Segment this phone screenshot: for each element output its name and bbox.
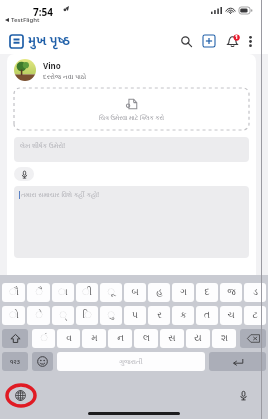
staticText: ર [157, 311, 162, 320]
button[interactable]: ્ [52, 306, 74, 325]
staticText: ક [180, 311, 187, 320]
button[interactable]: દ [196, 283, 218, 302]
staticText: ત [204, 311, 210, 320]
button[interactable]: Switch keyboard language [13, 388, 28, 403]
staticText: દ [204, 288, 210, 297]
staticText: ટ [252, 311, 258, 320]
button[interactable]: ા [52, 283, 74, 302]
staticText: ગુજરાતી [119, 358, 143, 365]
button[interactable]: લેખ શીર્ષક ઉમેરો! [14, 137, 249, 162]
staticText: વ [66, 334, 72, 343]
button[interactable]: ક [172, 306, 194, 325]
staticText: લેખ શીર્ષક ઉમેરો! [20, 141, 65, 150]
staticText: ચ [227, 311, 235, 320]
staticText: હ [156, 288, 163, 297]
button[interactable]: ચિત્ર ઉમેરવા માટે ક્લિક કરો [14, 88, 249, 130]
button[interactable]: વ [57, 329, 80, 348]
button[interactable]: Add new [199, 31, 219, 51]
button[interactable]: ટ [244, 306, 266, 325]
staticText: Vino [43, 60, 61, 71]
staticText: પ [132, 311, 138, 320]
staticText: લ [143, 334, 150, 343]
staticText: જ [227, 288, 236, 297]
button[interactable]: િ [76, 306, 98, 325]
button[interactable]: ગુજરાતી [57, 352, 205, 371]
button[interactable]: More options [243, 34, 258, 49]
button[interactable]: તમારા સમાચાર વિશે કહીં કહો! [14, 186, 249, 258]
staticText: શ [221, 334, 228, 343]
button[interactable]: Vino [14, 59, 87, 81]
button[interactable]: ન [108, 329, 132, 348]
staticText: દરરોજ નવા પાઠો [43, 72, 87, 81]
staticText: ચિત્ર ઉમેરવા માટે ક્લિક કરો [99, 114, 165, 122]
staticText: ં [40, 334, 48, 343]
button[interactable]: શ [212, 329, 236, 348]
button[interactable]: Notifications [222, 31, 242, 51]
staticText: ય [194, 334, 202, 343]
button[interactable]: ો [2, 306, 25, 325]
button[interactable]: ગ [172, 283, 194, 302]
staticText: TestFlight [11, 16, 40, 24]
button[interactable]: ં [32, 329, 55, 348]
button[interactable]: હ [148, 283, 170, 302]
staticText: ્ [59, 311, 67, 320]
staticText: ૂ [107, 288, 115, 297]
staticText: ૈ [35, 288, 43, 297]
staticText: બ [131, 288, 139, 297]
button[interactable]: ુ [100, 306, 122, 325]
button[interactable]: ર [148, 306, 170, 325]
staticText: 7:54 [33, 5, 53, 19]
staticText: સ [168, 334, 176, 343]
button[interactable]: સ [160, 329, 184, 348]
button[interactable]: બ [124, 283, 146, 302]
button[interactable]: ૂ [100, 283, 122, 302]
button[interactable]: પ [124, 306, 146, 325]
staticText: ી [82, 288, 92, 297]
button[interactable]: ે [27, 306, 50, 325]
button[interactable]: લ [134, 329, 158, 348]
button[interactable]: ત [196, 306, 218, 325]
button[interactable]: ય [186, 329, 210, 348]
staticText: ૧૨૩ [10, 356, 21, 368]
button[interactable]: ૌ [2, 283, 25, 302]
staticText: ન [117, 334, 124, 343]
staticText: ડ [253, 288, 258, 297]
button[interactable]: ડ [244, 283, 266, 302]
button[interactable]: ૧૨૩ [2, 352, 28, 371]
button[interactable]: Shift [2, 329, 28, 348]
button[interactable]: ૈ [27, 283, 50, 302]
staticText: ૌ [9, 288, 19, 297]
staticText: 1 [235, 34, 238, 41]
staticText: ે [35, 311, 43, 320]
button[interactable]: Emoji [32, 352, 53, 371]
button[interactable]: Backspace [240, 329, 266, 348]
button[interactable]: જ [220, 283, 242, 302]
button[interactable]: Return [209, 352, 266, 371]
staticText: િ [82, 311, 92, 320]
button[interactable]: Voice input [14, 167, 34, 181]
button[interactable]: ી [76, 283, 98, 302]
button[interactable]: Search [176, 31, 196, 51]
staticText: તમારા સમાચાર વિશે કહીં કહો! [21, 190, 99, 199]
button[interactable]: Dictation [236, 388, 250, 402]
staticText: ગ [180, 288, 187, 297]
button[interactable]: મુખ પૃષ્ઠ [10, 30, 70, 52]
button[interactable]: ચ [220, 306, 242, 325]
staticText: ુ [107, 311, 115, 320]
staticText: ો [9, 311, 19, 320]
button[interactable]: મ [82, 329, 106, 348]
staticText: મુખ પૃષ્ઠ [28, 30, 70, 52]
staticText: મ [91, 334, 98, 343]
staticText: ા [58, 288, 68, 297]
